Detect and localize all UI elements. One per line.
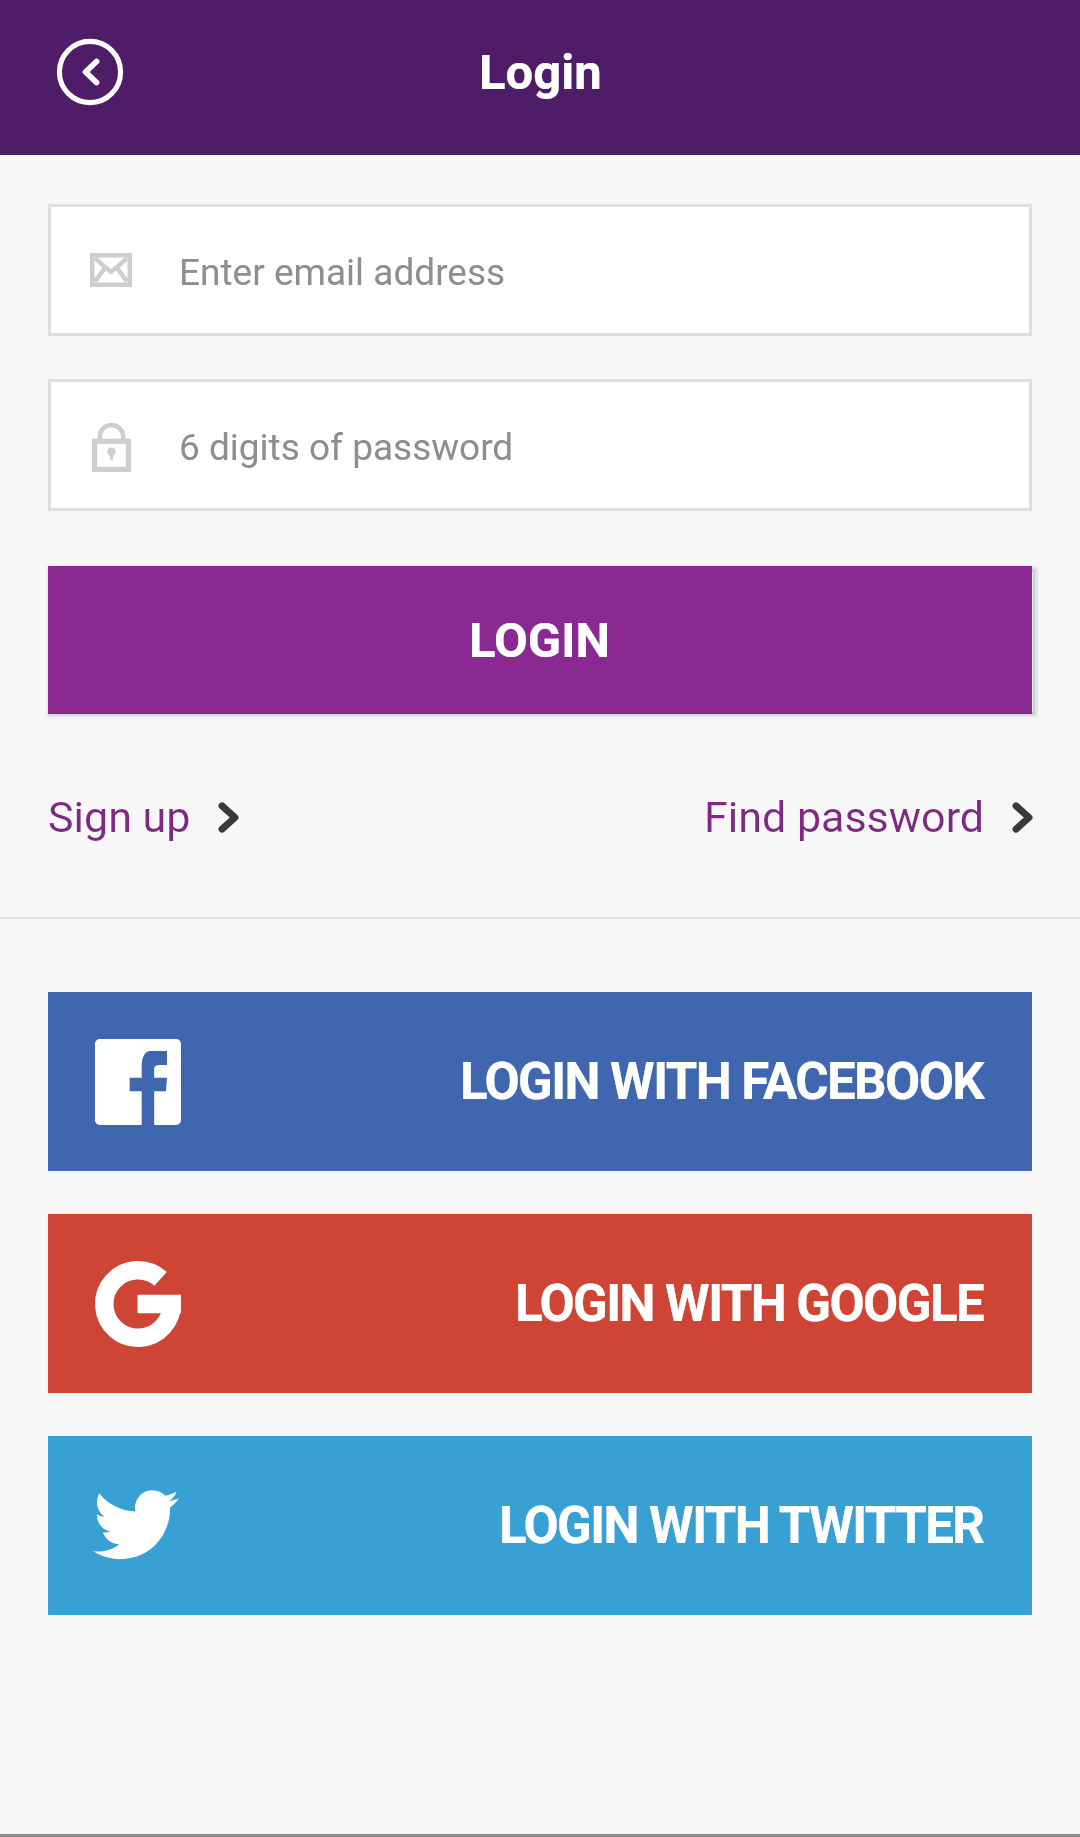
button[interactable]: LOGIN WITH GOOGLE [48,1214,1032,1393]
button[interactable]: LOGIN WITH TWITTER [48,1436,1032,1615]
button[interactable]: 6 digits of password [48,379,1032,511]
button[interactable]: Back [56,38,124,106]
button[interactable]: Enter email address [48,204,1032,336]
button[interactable]: Sign up [48,792,238,842]
staticText: Find password [704,792,985,842]
staticText: Sign up [48,792,191,842]
button[interactable]: Find password [704,792,1032,842]
button[interactable]: LOGIN [48,566,1032,714]
staticText: Enter email address [179,251,506,294]
staticText: LOGIN [469,612,611,669]
staticText: LOGIN WITH TWITTER [499,1496,984,1556]
staticText: LOGIN WITH FACEBOOK [460,1052,984,1112]
button[interactable]: LOGIN WITH FACEBOOK [48,992,1032,1171]
staticText: 6 digits of password [179,426,514,469]
staticText: LOGIN WITH GOOGLE [515,1274,984,1334]
staticText: Login [479,44,602,101]
